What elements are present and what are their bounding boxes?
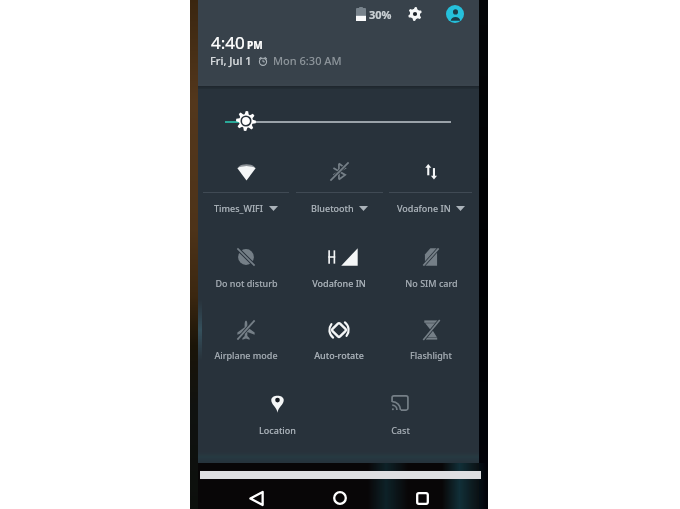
staticText: Do not disturb (215, 277, 278, 289)
button[interactable]: Location (231, 383, 323, 440)
staticText: Cast (391, 424, 410, 436)
staticText: Mon 6:30 AM (273, 53, 342, 68)
button[interactable]: Back (240, 482, 272, 509)
staticText: PM (247, 38, 263, 52)
button[interactable]: Auto-rotate (293, 310, 385, 367)
staticText: Times_WIFI (214, 202, 264, 214)
button[interactable]: Brightness (232, 107, 260, 135)
staticText: Fri, Jul 1 (210, 53, 252, 68)
button[interactable]: Bluetooth (322, 154, 356, 188)
staticText: No SIM card (405, 277, 458, 289)
staticText: 30% (369, 7, 392, 22)
button[interactable]: Cast (354, 383, 446, 440)
button[interactable]: Home (324, 482, 356, 509)
button[interactable]: Flashlight (385, 310, 477, 367)
button[interactable]: Vodafone IN (293, 237, 385, 294)
staticText: Auto-rotate (314, 349, 364, 361)
staticText: Bluetooth (311, 202, 354, 214)
button[interactable]: Mobile data (414, 154, 448, 188)
button[interactable]: Bluetooth (294, 200, 384, 215)
staticText: 4:40 (211, 31, 245, 54)
button[interactable]: Settings (403, 2, 427, 26)
button[interactable]: Wi-Fi (229, 154, 263, 188)
staticText: Flashlight (410, 349, 452, 361)
button[interactable]: Recent apps (406, 482, 438, 509)
staticText: Airplane mode (214, 349, 278, 361)
button[interactable]: User profile (446, 5, 464, 23)
button[interactable]: No SIM card (385, 237, 477, 294)
staticText: Vodafone IN (312, 277, 366, 289)
staticText: Location (259, 424, 296, 436)
button[interactable]: Airplane mode (200, 310, 292, 367)
button[interactable]: Do not disturb (200, 237, 292, 294)
button[interactable]: Times_WIFI (201, 200, 291, 215)
button[interactable]: Vodafone IN (386, 200, 476, 215)
staticText: Vodafone IN (397, 202, 451, 214)
